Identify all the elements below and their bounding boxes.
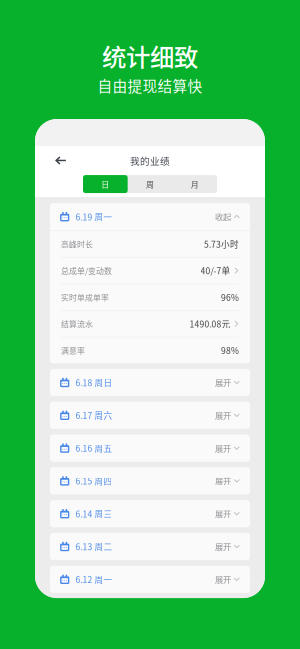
button[interactable]: 6.13 周二	[50, 533, 250, 560]
staticText: 日	[101, 178, 109, 190]
staticText: 6.12 周一	[75, 573, 112, 585]
button[interactable]: 6.16 周五	[50, 434, 250, 462]
staticText: 总成单/变动数	[61, 265, 112, 276]
staticText: 6.19 周一	[75, 210, 112, 223]
staticText: 1490.08元	[189, 318, 230, 330]
staticText: 96%	[221, 291, 239, 303]
staticText: 40/-7单	[200, 264, 230, 277]
button[interactable]: 月	[172, 175, 217, 193]
button[interactable]: 6.18 周日	[50, 369, 250, 396]
button[interactable]: Back	[49, 150, 73, 172]
staticText: 6.17 周六	[75, 409, 112, 421]
button[interactable]: 6.14 周三	[50, 500, 250, 527]
staticText: 统计细致	[102, 38, 198, 73]
staticText: 5.73小时	[204, 238, 239, 250]
staticText: 6.16 周五	[75, 442, 112, 454]
staticText: 自由提现结算快	[97, 75, 202, 96]
staticText: 展开	[215, 540, 231, 552]
staticText: 高峰时长	[61, 238, 93, 250]
staticText: 6.13 周二	[75, 540, 112, 553]
button[interactable]: 6.15 周四	[50, 467, 250, 494]
staticText: 我的业绩	[130, 154, 170, 167]
button[interactable]: 日	[83, 175, 128, 193]
staticText: 展开	[215, 475, 231, 487]
button[interactable]: 周	[128, 175, 172, 193]
staticText: 展开	[215, 409, 231, 421]
button[interactable]: 6.17 周六	[50, 402, 250, 429]
staticText: 展开	[215, 573, 231, 585]
staticText: 6.14 周三	[75, 507, 112, 520]
staticText: 6.18 周日	[75, 376, 112, 389]
staticText: 实时单成单率	[61, 291, 109, 303]
staticText: 6.15 周四	[75, 475, 112, 487]
staticText: 展开	[215, 442, 231, 454]
staticText: 月	[191, 178, 199, 190]
staticText: 展开	[215, 376, 231, 388]
staticText: 满意率	[61, 345, 85, 356]
staticText: 展开	[215, 508, 231, 520]
staticText: 结算流水	[61, 318, 93, 329]
staticText: 周	[146, 178, 154, 190]
staticText: 98%	[221, 344, 239, 357]
staticText: 收起	[215, 211, 231, 223]
button[interactable]: 6.19 周一	[50, 203, 250, 230]
button[interactable]: 6.12 周一	[50, 566, 250, 593]
